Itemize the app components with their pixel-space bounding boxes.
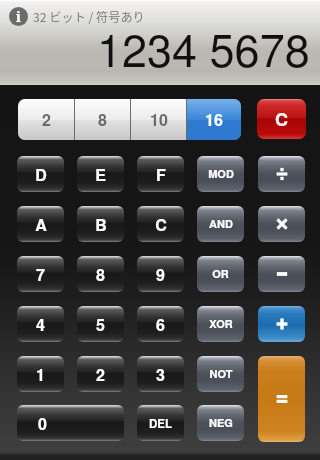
button[interactable]: 6 xyxy=(137,306,184,342)
staticText: 16 xyxy=(205,108,223,131)
button[interactable]: 2 xyxy=(77,356,124,392)
button[interactable]: 8 xyxy=(75,99,130,140)
button[interactable]: 8 xyxy=(77,256,124,292)
staticText: 5 xyxy=(96,313,105,336)
staticText: i xyxy=(16,7,21,26)
staticText: DEL xyxy=(149,415,172,431)
button[interactable]: 5 xyxy=(77,306,124,342)
button[interactable]: A xyxy=(17,206,64,242)
staticText: 1234 5678 xyxy=(97,15,310,79)
staticText: NOT xyxy=(209,366,233,382)
staticText: 9 xyxy=(156,263,165,286)
button[interactable]: Multiply xyxy=(258,206,305,242)
button[interactable]: 3 xyxy=(137,356,184,392)
button[interactable]: 1 xyxy=(17,356,64,392)
staticText: 0 xyxy=(38,412,47,435)
staticText: 7 xyxy=(36,263,45,286)
staticText: D xyxy=(35,163,47,186)
staticText: 1 xyxy=(36,363,45,386)
button[interactable]: 2 xyxy=(18,99,74,140)
button[interactable]: Subtract xyxy=(258,256,305,292)
button[interactable]: 4 xyxy=(17,306,64,342)
button[interactable]: NOT xyxy=(197,356,244,392)
button[interactable]: 9 xyxy=(137,256,184,292)
staticText: 2 xyxy=(42,108,51,131)
staticText: 4 xyxy=(36,313,45,336)
staticText: XOR xyxy=(209,316,233,332)
button[interactable]: Clear xyxy=(257,99,306,139)
staticText: E xyxy=(95,163,106,186)
button[interactable]: 16 xyxy=(187,99,241,140)
staticText: AND xyxy=(209,216,233,232)
button[interactable]: Info xyxy=(9,7,28,26)
staticText: C xyxy=(275,106,288,132)
staticText: 10 xyxy=(150,108,168,131)
button[interactable]: NEG xyxy=(197,405,244,441)
staticText: 8 xyxy=(96,263,105,286)
button[interactable]: D xyxy=(17,156,64,192)
button[interactable]: Divide xyxy=(258,156,305,192)
button[interactable]: MOD xyxy=(197,156,244,192)
button[interactable]: XOR xyxy=(197,306,244,342)
staticText: 8 xyxy=(98,108,107,131)
staticText: A xyxy=(35,213,47,236)
button[interactable]: Add xyxy=(258,306,305,342)
button[interactable]: 10 xyxy=(131,99,186,140)
staticText: B xyxy=(95,213,107,236)
button[interactable]: Equals xyxy=(258,356,305,442)
staticText: 32 ビット / 符号あり xyxy=(33,8,145,26)
button[interactable]: C xyxy=(137,206,184,242)
staticText: 2 xyxy=(96,363,105,386)
button[interactable]: AND xyxy=(197,206,244,242)
button[interactable]: F xyxy=(137,156,184,192)
staticText: NEG xyxy=(209,415,233,431)
staticText: MOD xyxy=(208,166,234,182)
button[interactable]: B xyxy=(77,206,124,242)
staticText: 3 xyxy=(156,363,165,386)
button[interactable]: DEL xyxy=(137,405,184,441)
staticText: F xyxy=(156,163,166,186)
staticText: OR xyxy=(212,266,229,282)
button[interactable]: 7 xyxy=(17,256,64,292)
staticText: C xyxy=(155,213,167,236)
button[interactable]: E xyxy=(77,156,124,192)
staticText: 6 xyxy=(156,313,165,336)
button[interactable]: 0 xyxy=(17,405,124,441)
button[interactable]: OR xyxy=(197,256,244,292)
